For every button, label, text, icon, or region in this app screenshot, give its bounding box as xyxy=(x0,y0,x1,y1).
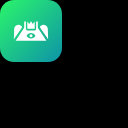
button[interactable]: Open envelope with crown xyxy=(0,0,62,62)
